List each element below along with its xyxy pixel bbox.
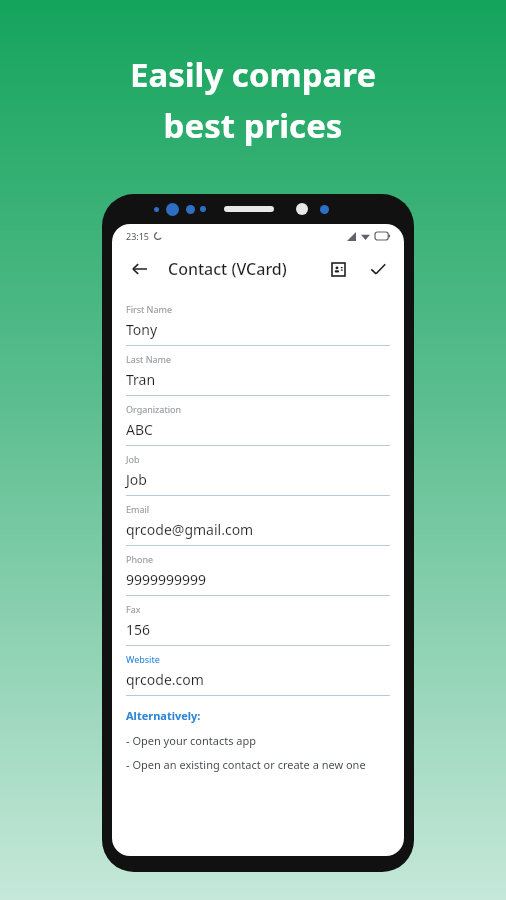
staticText: 156	[126, 620, 151, 639]
button[interactable]: Organization	[126, 396, 390, 446]
staticText: ABC	[126, 420, 153, 439]
staticText: Job	[126, 453, 140, 465]
staticText: Website	[126, 653, 160, 665]
staticText: Tran	[126, 370, 156, 389]
staticText: Alternatively:	[126, 708, 201, 723]
button[interactable]: First Name	[126, 296, 390, 346]
staticText: Phone	[126, 553, 154, 565]
staticText: Fax	[126, 603, 141, 615]
button[interactable]: Back	[124, 254, 154, 284]
staticText: best prices	[0, 103, 506, 148]
staticText: First Name	[126, 303, 172, 315]
staticText: Contact (VCard)	[168, 258, 287, 280]
button[interactable]: Save	[364, 255, 392, 283]
staticText: Job	[126, 470, 147, 489]
staticText: Email	[126, 503, 150, 515]
staticText: - Open an existing contact or create a n…	[126, 757, 366, 772]
staticText: 9999999999	[126, 570, 207, 589]
button[interactable]: Contact card	[324, 255, 352, 283]
staticText: Easily compare	[0, 52, 506, 97]
staticText: - Open your contacts app	[126, 733, 257, 748]
staticText: Organization	[126, 403, 181, 415]
button[interactable]: Website	[126, 646, 390, 696]
staticText: 23:15	[126, 230, 150, 242]
button[interactable]: Job	[126, 446, 390, 496]
staticText: qrcode.com	[126, 670, 204, 689]
button[interactable]: Last Name	[126, 346, 390, 396]
staticText: Tony	[126, 320, 158, 339]
staticText: qrcode@gmail.com	[126, 520, 254, 539]
button[interactable]: Phone	[126, 546, 390, 596]
staticText: Last Name	[126, 353, 172, 365]
button[interactable]: Fax	[126, 596, 390, 646]
button[interactable]: Email	[126, 496, 390, 546]
